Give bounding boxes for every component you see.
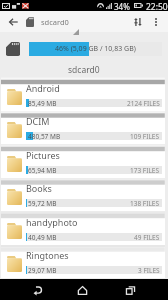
button[interactable]: Back (22, 279, 52, 300)
button[interactable]: DCIM (1, 113, 165, 144)
button[interactable]: Recents (115, 279, 145, 300)
button[interactable]: Back (0, 11, 26, 32)
staticText: 49 FILES (134, 233, 160, 241)
staticText: Android (26, 82, 60, 94)
staticText: Pictures (26, 149, 60, 161)
staticText: sdcard0 (68, 64, 100, 76)
staticText: 85,49 MB (28, 99, 57, 107)
staticText: 2124 FILES (127, 99, 160, 107)
button[interactable]: Sort (128, 11, 147, 32)
staticText: 59,72 MB (28, 199, 57, 207)
button[interactable]: Android (1, 80, 165, 111)
button[interactable]: handyphoto (1, 214, 165, 245)
staticText: 173 FILES (130, 166, 160, 174)
staticText: 22:50 (146, 1, 168, 12)
staticText: Books (26, 182, 52, 194)
staticText: 138 FILES (130, 199, 160, 207)
staticText: 480,57 MB (28, 132, 61, 140)
staticText: Ringtones (26, 249, 69, 261)
button[interactable]: More options (147, 11, 164, 32)
staticText: handyphoto (26, 216, 78, 228)
staticText: 40,49 MB (28, 233, 57, 241)
staticText: 65,94 MB (28, 166, 57, 174)
staticText: sdcard0 (41, 17, 69, 27)
staticText: 3 FILES (138, 266, 160, 274)
staticText: 46% (5,09 GB / 10,83 GB) (55, 44, 136, 54)
staticText: 29,07 MB (28, 266, 57, 274)
staticText: 34% (114, 1, 130, 12)
staticText: 109 FILES (130, 132, 160, 140)
button[interactable]: Home (67, 279, 97, 300)
staticText: DCIM (26, 115, 50, 127)
button[interactable]: Ringtones (1, 247, 165, 278)
button[interactable]: Pictures (1, 147, 165, 178)
button[interactable]: Books (1, 180, 165, 211)
